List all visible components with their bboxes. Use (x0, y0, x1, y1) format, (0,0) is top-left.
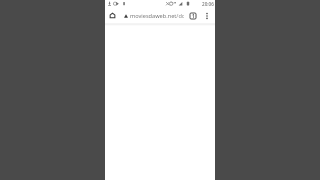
staticText: moviesdaweb.net/down (130, 12, 184, 20)
button[interactable]: Customize and control Chrome (201, 10, 212, 21)
staticText: 1 (192, 13, 195, 19)
staticText: 20:06 (202, 1, 214, 7)
button[interactable]: Switch or close tabs (188, 11, 198, 21)
button[interactable]: Home (106, 9, 118, 21)
button[interactable]: moviesdaweb.net/down (130, 11, 184, 20)
button[interactable]: Site information (121, 11, 130, 20)
